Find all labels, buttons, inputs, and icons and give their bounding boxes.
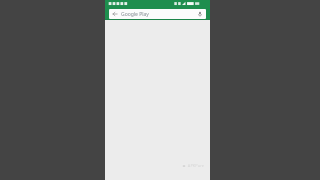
button[interactable]: Voice search [194, 9, 206, 19]
button[interactable]: Back [109, 9, 121, 19]
button[interactable]: Back [109, 9, 206, 19]
staticText: Google Play [121, 11, 149, 18]
staticText: APKPure [187, 163, 204, 168]
